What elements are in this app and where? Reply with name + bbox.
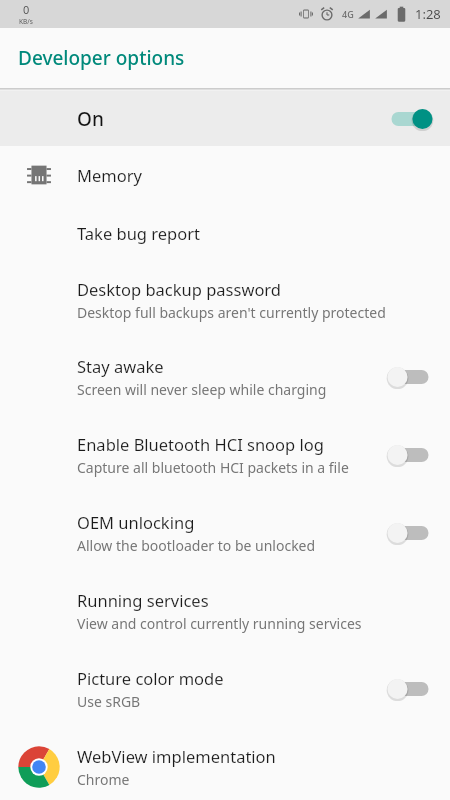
staticText: OEM unlocking xyxy=(77,511,195,533)
staticText: KB/s xyxy=(19,17,33,26)
staticText: WebView implementation xyxy=(77,745,276,767)
other: Picture color mode xyxy=(386,674,436,704)
button[interactable]: On xyxy=(0,91,450,146)
staticText: Capture all bluetooth HCI packets in a f… xyxy=(77,458,349,477)
button[interactable]: Memory xyxy=(0,146,450,204)
button[interactable]: Enable Bluetooth HCI snoop log xyxy=(0,416,450,494)
other: Stay awake xyxy=(386,362,436,392)
staticText: Running services xyxy=(77,589,209,611)
button[interactable]: Stay awake xyxy=(0,338,450,416)
staticText: View and control currently running servi… xyxy=(77,614,362,633)
staticText: 1:28 xyxy=(415,5,441,23)
other: Memory xyxy=(26,162,52,188)
button[interactable]: Picture color mode xyxy=(0,650,450,728)
button[interactable]: Running services xyxy=(0,572,450,650)
button[interactable]: Take bug report xyxy=(0,204,450,262)
staticText: Developer options xyxy=(18,45,185,71)
other: Chrome xyxy=(17,745,61,789)
staticText: Enable Bluetooth HCI snoop log xyxy=(77,433,324,455)
staticText: Use sRGB xyxy=(77,692,141,711)
staticText: On xyxy=(77,106,386,132)
staticText: Desktop backup password xyxy=(77,278,282,300)
staticText: Chrome xyxy=(77,770,130,789)
other: Enable Bluetooth HCI snoop log xyxy=(386,440,436,470)
staticText: Picture color mode xyxy=(77,667,224,689)
staticText: Memory xyxy=(77,164,142,186)
staticText: 0 xyxy=(23,2,30,17)
staticText: Take bug report xyxy=(77,222,200,244)
button[interactable]: Chrome xyxy=(0,728,450,800)
staticText: Desktop full backups aren't currently pr… xyxy=(77,303,386,322)
other: OEM unlocking xyxy=(386,518,436,548)
button[interactable]: OEM unlocking xyxy=(0,494,450,572)
staticText: Screen will never sleep while charging xyxy=(77,380,327,399)
staticText: Stay awake xyxy=(77,355,164,377)
staticText: 4G xyxy=(342,8,354,20)
staticText: Allow the bootloader to be unlocked xyxy=(77,536,316,555)
button[interactable]: Desktop backup password xyxy=(0,262,450,338)
